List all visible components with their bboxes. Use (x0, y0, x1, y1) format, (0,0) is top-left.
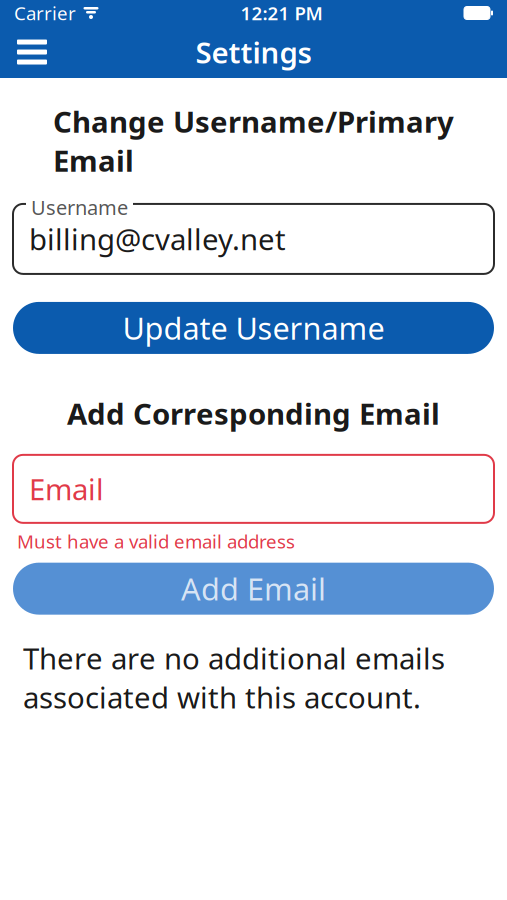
staticText: Add Corresponding Email (67, 394, 440, 433)
staticText: billing@cvalley.net (29, 219, 286, 258)
staticText: Settings (195, 32, 311, 71)
staticText: Add Email (181, 568, 326, 609)
staticText: Username (31, 194, 128, 220)
staticText: There are no additional emails associate… (23, 639, 445, 717)
staticText: Carrier (14, 1, 76, 25)
staticText: Must have a valid email address (17, 529, 295, 554)
button[interactable]: Update Username (13, 302, 494, 354)
staticText: Update Username (122, 307, 384, 348)
button[interactable]: Add Email (13, 563, 494, 615)
button[interactable]: Menu (6, 26, 58, 78)
staticText: Email (29, 469, 104, 508)
staticText: 12:21 PM (240, 1, 322, 25)
staticText: Change Username/Primary Email (53, 102, 454, 180)
